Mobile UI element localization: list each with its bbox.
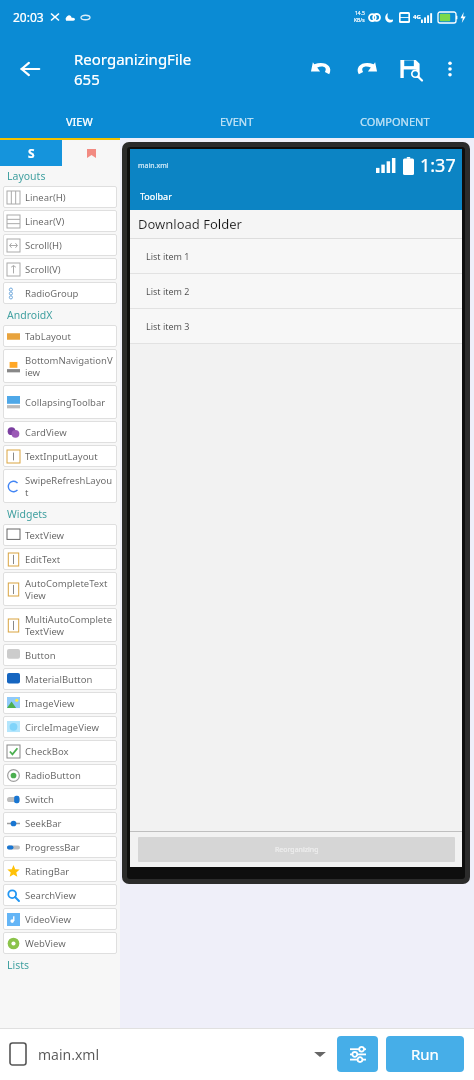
button[interactable]: RadioButton bbox=[3, 764, 117, 786]
staticText: Toolbar bbox=[140, 190, 172, 202]
button[interactable]: VIEW bbox=[0, 105, 158, 138]
staticText: CollapsingToolbar bbox=[25, 396, 106, 409]
button[interactable]: Layouts palette bbox=[0, 140, 62, 166]
staticText: Switch bbox=[25, 793, 54, 806]
button[interactable]: CircleImageView bbox=[3, 716, 117, 738]
staticText: Lists bbox=[7, 958, 30, 972]
button[interactable]: Button bbox=[3, 644, 117, 666]
button[interactable]: ImageView bbox=[3, 692, 117, 714]
button[interactable]: TabLayout bbox=[3, 325, 117, 347]
staticText: ReorganizingFile bbox=[74, 49, 192, 69]
staticText: AndroidX bbox=[7, 308, 53, 322]
button[interactable]: Redo bbox=[344, 47, 388, 91]
button[interactable]: Settings bbox=[337, 1036, 378, 1072]
button[interactable]: Undo bbox=[300, 47, 344, 91]
staticText: CardView bbox=[25, 426, 67, 439]
staticText: SearchView bbox=[25, 889, 76, 902]
button[interactable]: Linear(V) bbox=[3, 210, 117, 232]
button[interactable]: main.xml bbox=[10, 1028, 337, 1080]
button[interactable]: EditText bbox=[3, 548, 117, 570]
staticText: SwipeRefreshLayout bbox=[25, 474, 113, 498]
button[interactable]: RadioGroup bbox=[3, 282, 117, 304]
button[interactable]: TextView bbox=[3, 524, 117, 546]
staticText: Run bbox=[411, 1044, 439, 1064]
staticText: MaterialButton bbox=[25, 673, 93, 686]
button[interactable]: Linear(H) bbox=[3, 186, 117, 208]
button[interactable]: RatingBar bbox=[3, 860, 117, 882]
staticText: Download Folder bbox=[138, 215, 242, 233]
staticText: 655 bbox=[74, 69, 100, 89]
staticText: TextInputLayout bbox=[25, 450, 98, 463]
staticText: RatingBar bbox=[25, 865, 70, 878]
button[interactable]: BottomNavigationView bbox=[3, 349, 117, 383]
staticText: ImageView bbox=[25, 697, 75, 710]
staticText: List item 2 bbox=[146, 285, 190, 297]
button[interactable]: CardView bbox=[3, 421, 117, 443]
button[interactable]: SwipeRefreshLayout bbox=[3, 469, 117, 503]
staticText: COMPONENT bbox=[360, 114, 430, 129]
staticText: 1:37 bbox=[420, 153, 456, 178]
button[interactable]: MultiAutoCompleteTextView bbox=[3, 608, 117, 642]
button[interactable]: VideoView bbox=[3, 908, 117, 930]
staticText: TextView bbox=[25, 529, 65, 542]
staticText: BottomNavigationView bbox=[25, 354, 113, 378]
button[interactable]: ProgressBar bbox=[3, 836, 117, 858]
button[interactable]: Bookmarks bbox=[62, 140, 120, 166]
staticText: SeekBar bbox=[25, 817, 62, 830]
button[interactable]: AutoCompleteTextView bbox=[3, 572, 117, 606]
staticText: main.xml bbox=[138, 161, 169, 171]
button[interactable]: SeekBar bbox=[3, 812, 117, 834]
staticText: MultiAutoCompleteTextView bbox=[25, 613, 113, 637]
button[interactable]: WebView bbox=[3, 932, 117, 954]
staticText: Widgets bbox=[7, 507, 48, 521]
staticText: KB/s bbox=[354, 17, 365, 24]
button[interactable]: Switch bbox=[3, 788, 117, 810]
staticText: List item 3 bbox=[146, 320, 190, 332]
staticText: S bbox=[28, 145, 35, 161]
button[interactable]: Scroll(V) bbox=[3, 258, 117, 280]
staticText: AutoCompleteTextView bbox=[25, 577, 113, 601]
staticText: 14.5 bbox=[355, 10, 365, 17]
staticText: main.xml bbox=[38, 1045, 100, 1064]
button[interactable]: SearchView bbox=[3, 884, 117, 906]
button[interactable]: List item 1 bbox=[130, 239, 462, 273]
staticText: WebView bbox=[25, 937, 66, 950]
button[interactable]: TextInputLayout bbox=[3, 445, 117, 467]
staticText: EVENT bbox=[220, 114, 254, 129]
button[interactable]: Save bbox=[388, 47, 432, 91]
staticText: Linear(H) bbox=[25, 191, 66, 204]
button[interactable]: CollapsingToolbar bbox=[3, 385, 117, 419]
staticText: Layouts bbox=[7, 169, 46, 183]
staticText: RadioGroup bbox=[25, 287, 79, 300]
staticText: VIEW bbox=[66, 114, 93, 129]
staticText: Linear(V) bbox=[25, 215, 65, 228]
button[interactable]: Scroll(H) bbox=[3, 234, 117, 256]
staticText: Scroll(V) bbox=[25, 263, 61, 276]
staticText: Button bbox=[25, 649, 56, 662]
button[interactable]: CheckBox bbox=[3, 740, 117, 762]
staticText: EditText bbox=[25, 553, 61, 566]
staticText: CheckBox bbox=[25, 745, 69, 758]
button[interactable]: List item 2 bbox=[130, 274, 462, 308]
button[interactable]: EVENT bbox=[158, 105, 316, 138]
button[interactable]: COMPONENT bbox=[316, 105, 474, 138]
staticText: 4G bbox=[413, 13, 421, 21]
staticText: List item 1 bbox=[146, 250, 190, 262]
staticText: ProgressBar bbox=[25, 841, 80, 854]
staticText: VideoView bbox=[25, 913, 71, 926]
button[interactable]: Back bbox=[10, 49, 50, 89]
button[interactable]: List item 3 bbox=[130, 309, 462, 343]
staticText: CircleImageView bbox=[25, 721, 99, 734]
staticText: RadioButton bbox=[25, 769, 81, 782]
button[interactable]: MaterialButton bbox=[3, 668, 117, 690]
button[interactable]: More options bbox=[432, 51, 468, 87]
staticText: Reorganizing bbox=[275, 845, 319, 855]
button[interactable]: Run bbox=[386, 1036, 464, 1072]
staticText: TabLayout bbox=[25, 330, 71, 343]
staticText: 20:03 bbox=[13, 9, 44, 25]
staticText: Scroll(H) bbox=[25, 239, 62, 252]
